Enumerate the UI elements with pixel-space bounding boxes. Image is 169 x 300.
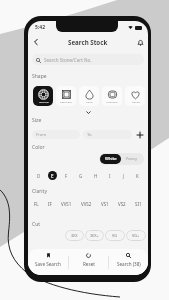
button[interactable]: PRINCESS [56,86,76,106]
button[interactable]: Search Stone/Cert No. [32,54,144,65]
button[interactable]: PEAR [79,86,99,106]
staticText: Color [32,144,45,151]
button[interactable]: I [105,171,114,180]
button[interactable]: To [83,130,132,139]
button[interactable]: Add size range [136,131,144,139]
staticText: Search Stone/Cert No. [44,57,92,63]
button[interactable]: F [62,171,71,180]
staticText: PRINCESS [60,100,72,103]
staticText: VS2 [118,201,126,207]
staticText: SI1 [135,201,142,207]
button[interactable]: H [91,171,100,180]
staticText: F [65,173,68,179]
button[interactable]: VVS2 [81,199,92,208]
staticText: VS1 [101,201,109,207]
button[interactable]: VS1 [101,199,109,208]
button[interactable]: K [133,171,142,180]
staticText: VG+ [132,233,140,238]
button[interactable]: FL [34,199,39,208]
staticText: H [94,173,98,179]
button[interactable]: J [119,171,128,180]
button[interactable]: Notifications [133,35,147,49]
staticText: VG [112,233,118,238]
button[interactable]: Show more shapes [86,110,91,115]
staticText: CUSHION [106,100,118,103]
button[interactable]: VS2 [118,199,126,208]
staticText: K [136,173,139,179]
staticText: ROUND [39,100,49,103]
button[interactable]: G [76,171,85,180]
button[interactable]: IF [48,199,52,208]
staticText: To [87,132,92,138]
button[interactable]: VG [105,230,125,241]
staticText: FL [34,201,39,207]
staticText: G [79,173,83,179]
button[interactable]: E [48,171,57,180]
button[interactable]: From [32,130,80,139]
button[interactable]: VG+ [126,230,146,241]
button[interactable]: Search (38) [109,253,148,275]
staticText: Reset [83,261,95,267]
staticText: PEAR [86,100,93,103]
staticText: Fancy [126,156,138,162]
staticText: Shape [32,73,47,80]
button[interactable]: Back [29,35,43,49]
staticText: Save Search [35,261,61,267]
staticText: J [123,173,125,179]
staticText: 3EX+ [90,233,99,238]
staticText: 5:42 [35,24,45,31]
staticText: VVS1 [61,201,72,207]
staticText: 3EX [71,233,78,238]
staticText: From [36,132,47,138]
staticText: White [105,156,117,162]
button[interactable]: Save Search [28,253,68,275]
staticText: HEART [132,100,140,103]
staticText: D [37,173,41,179]
staticText: IF [48,201,52,207]
staticText: VVS2 [81,201,92,207]
button[interactable]: Reset [69,253,108,275]
button[interactable]: 3EX+ [85,230,104,241]
button[interactable]: SI1 [135,199,142,208]
button[interactable]: VVS1 [61,199,72,208]
staticText: I [109,173,111,179]
staticText: E [51,173,54,179]
staticText: Search Stock [68,38,108,46]
button[interactable]: D [34,171,43,180]
staticText: Size [32,117,42,124]
button[interactable]: ROUND [33,86,53,106]
button[interactable]: HEART [125,86,145,106]
button[interactable]: Fancy [121,154,143,164]
staticText: Cut [32,221,41,228]
button[interactable]: CUSHION [102,86,122,106]
button[interactable]: White [100,154,121,164]
staticText: Clarity [32,188,47,195]
staticText: Search (38) [117,261,141,267]
button[interactable]: 3EX [65,230,84,241]
